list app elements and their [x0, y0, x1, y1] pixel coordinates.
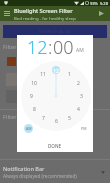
button[interactable]: 5 o'clock — [64, 113, 74, 123]
staticText: DONE — [48, 143, 62, 149]
staticText: 8 — [33, 106, 36, 113]
staticText: PM — [81, 126, 87, 131]
button[interactable]: 9 o'clock — [26, 91, 36, 101]
staticText: Filter — [3, 113, 17, 120]
staticText: 3 — [80, 93, 83, 100]
button[interactable]: 2 o'clock — [73, 78, 83, 88]
button[interactable]: PM — [79, 124, 88, 133]
button[interactable]: 11 o'clock — [38, 69, 48, 79]
staticText: AM — [76, 47, 84, 54]
button[interactable]: 12 — [27, 35, 48, 56]
staticText: Always displayed (recommended) — [3, 173, 77, 179]
staticText: 6 — [55, 118, 58, 125]
button[interactable]: 6 o'clock — [51, 116, 61, 126]
button[interactable]: Notification Bar — [0, 160, 110, 179]
button[interactable]: 1 o'clock — [64, 69, 74, 79]
staticText: 7 — [42, 115, 45, 122]
staticText: 10 — [31, 80, 37, 87]
staticText: Bed reading - for healthy sleep — [14, 15, 76, 21]
button[interactable]: Start filter — [94, 6, 108, 21]
button[interactable]: 3 o'clock — [76, 91, 86, 101]
staticText: 11 — [40, 71, 46, 78]
staticText: 9 — [30, 93, 33, 100]
staticText: 2 — [77, 80, 80, 87]
button[interactable]: DONE — [43, 142, 67, 150]
button[interactable]: AM — [24, 124, 33, 133]
button[interactable]: Advertisement — [3, 25, 107, 38]
staticText: Filter — [3, 43, 17, 50]
staticText: 93% — [90, 1, 98, 6]
staticText: INTERSTITIAL AD — [39, 29, 71, 34]
staticText: Bluelight Screen Filter — [14, 7, 73, 15]
button[interactable]: 00 — [53, 35, 74, 56]
staticText: AM — [26, 126, 32, 131]
button[interactable]: Navigation menu — [0, 6, 14, 21]
staticText: 5:28 — [100, 1, 108, 6]
button[interactable]: AM — [76, 47, 84, 54]
staticText: 5 — [68, 115, 71, 122]
staticText: : — [48, 35, 53, 56]
button[interactable]: 10 o'clock — [29, 78, 39, 88]
button[interactable]: 4 o'clock — [73, 104, 83, 114]
button[interactable]: 12 o'clock — [51, 66, 61, 76]
button[interactable]: 7 o'clock — [38, 113, 48, 123]
staticText: 4 — [77, 106, 80, 113]
staticText: Notification Bar — [3, 165, 45, 172]
staticText: 12 — [53, 68, 59, 75]
button[interactable]: 8 o'clock — [29, 104, 39, 114]
staticText: 1 — [68, 71, 71, 78]
